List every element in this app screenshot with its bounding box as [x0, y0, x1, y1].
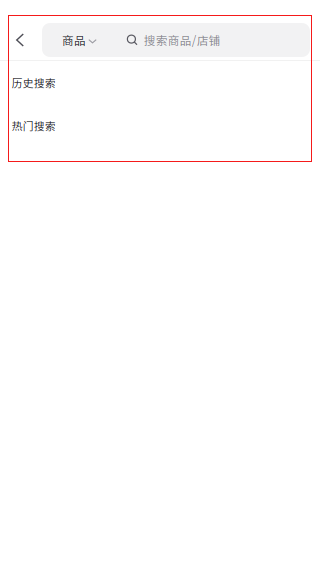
- button[interactable]: Back: [6, 23, 34, 57]
- staticText: 热门搜索: [12, 118, 56, 133]
- staticText: 商品: [62, 32, 86, 48]
- staticText: 历史搜索: [12, 75, 56, 90]
- button[interactable]: 搜索商品/店铺: [42, 23, 310, 57]
- button[interactable]: 商品: [42, 23, 105, 57]
- staticText: 搜索商品/店铺: [144, 32, 221, 48]
